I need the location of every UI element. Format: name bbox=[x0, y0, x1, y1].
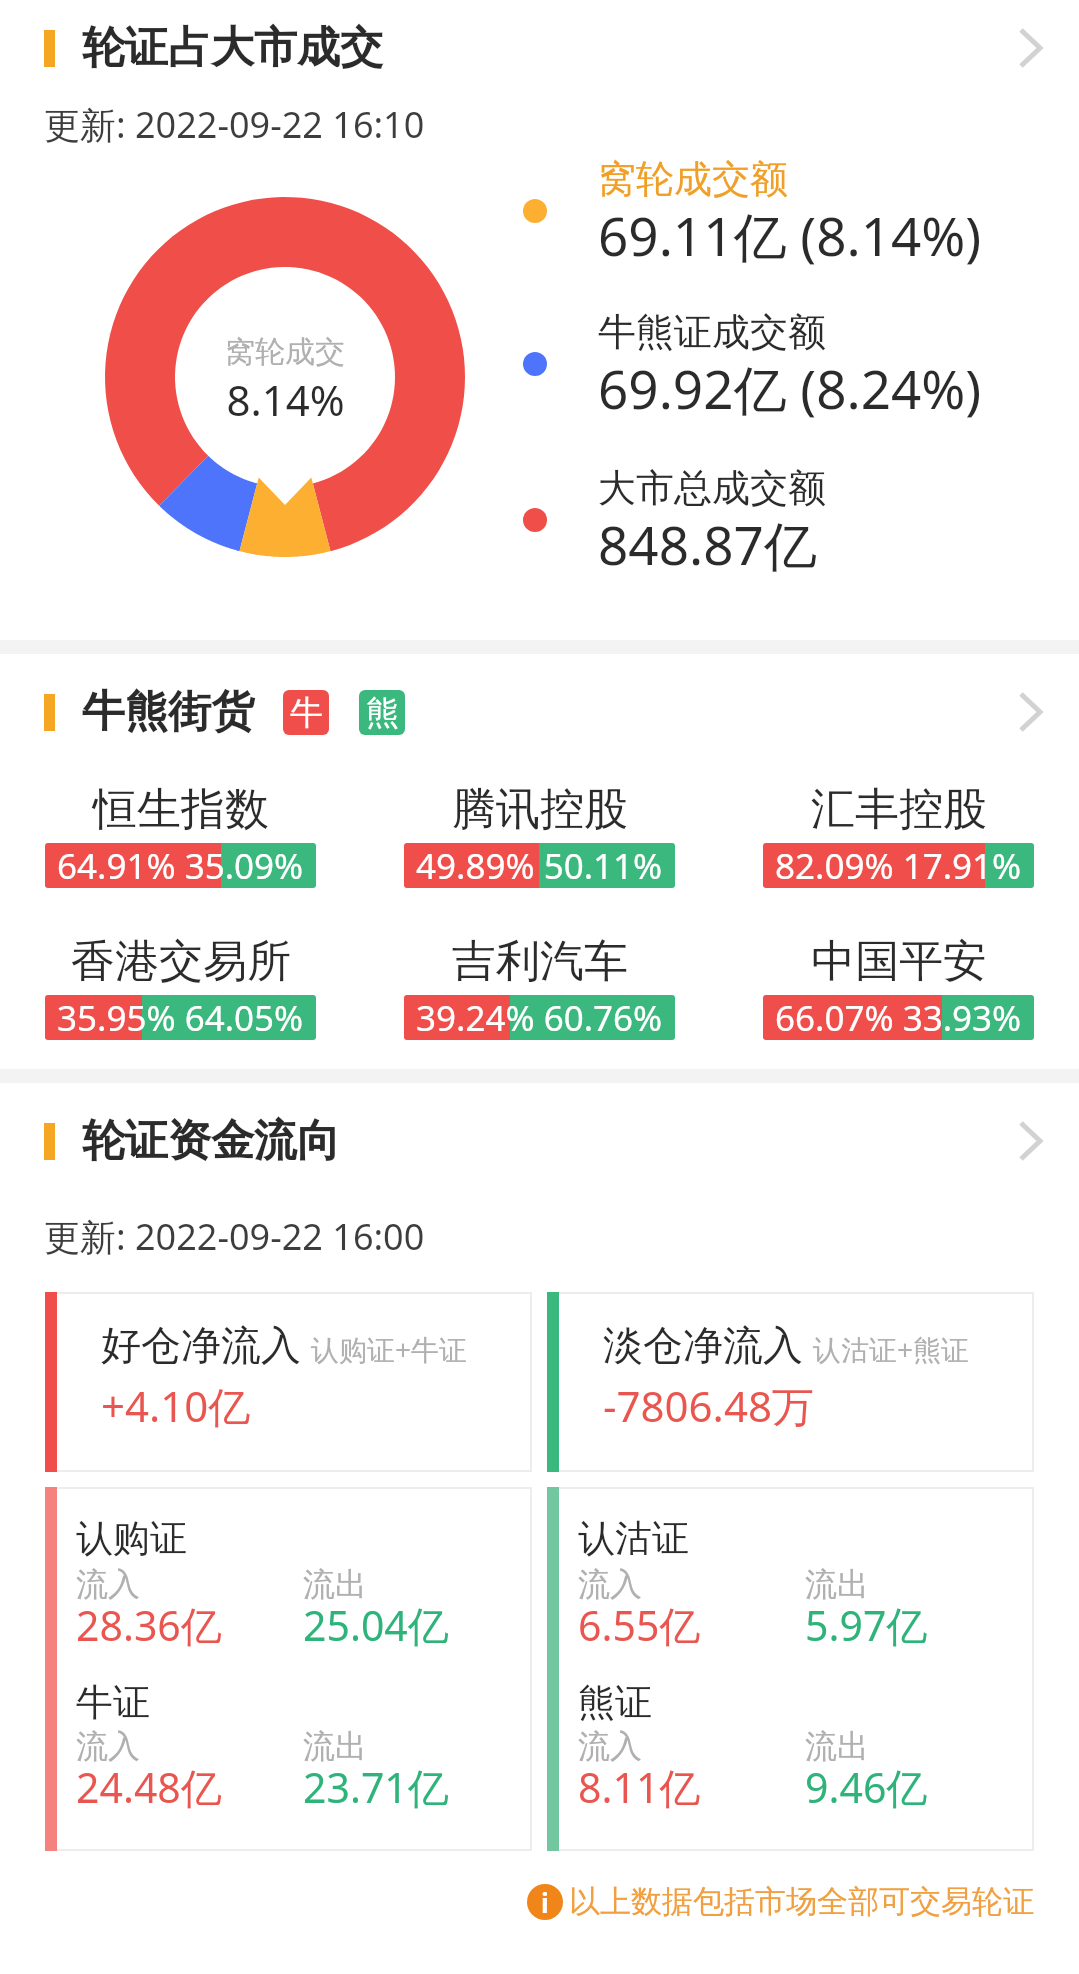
staticText: 中国平安 bbox=[811, 934, 987, 989]
staticText: 35.95% 64.05% bbox=[57, 994, 304, 1039]
button[interactable]: 香港交易所 bbox=[45, 934, 316, 1040]
staticText: 流出 bbox=[303, 1564, 367, 1604]
staticText: 流入 bbox=[578, 1726, 642, 1766]
staticText: 69.11亿 (8.14%) bbox=[598, 199, 982, 271]
staticText: +4.10亿 bbox=[101, 1377, 251, 1434]
staticText: 恒生指数 bbox=[93, 782, 269, 837]
staticText: 24.48亿 bbox=[76, 1759, 222, 1815]
button[interactable]: 腾讯控股 bbox=[404, 782, 675, 888]
staticText: 流入 bbox=[578, 1564, 642, 1604]
staticText: 流出 bbox=[805, 1564, 869, 1604]
staticText: 牛 bbox=[290, 692, 323, 734]
staticText: 5.97亿 bbox=[805, 1597, 928, 1653]
staticText: 窝轮成交额 bbox=[598, 155, 788, 203]
staticText: 69.92亿 (8.24%) bbox=[598, 352, 982, 424]
button[interactable]: 认沽证 bbox=[547, 1487, 1034, 1851]
button[interactable]: 牛熊街货 bbox=[0, 675, 1079, 749]
button[interactable]: 好仓净流入 bbox=[45, 1292, 532, 1472]
button[interactable]: 窝轮成交额 bbox=[523, 155, 907, 227]
staticText: 39.24% 60.76% bbox=[416, 994, 663, 1039]
staticText: -7806.48万 bbox=[603, 1377, 814, 1434]
staticText: 轮证资金流向 bbox=[82, 1114, 340, 1168]
staticText: 熊证 bbox=[578, 1679, 652, 1726]
staticText: 认沽证+熊证 bbox=[813, 1330, 970, 1368]
staticText: 66.07% 33.93% bbox=[775, 994, 1022, 1039]
staticText: 腾讯控股 bbox=[452, 782, 628, 837]
staticText: 848.87亿 bbox=[598, 508, 817, 580]
staticText: 好仓净流入 bbox=[101, 1320, 301, 1370]
staticText: 牛熊街货 bbox=[82, 685, 254, 739]
button[interactable]: 轮证资金流向 bbox=[0, 1104, 1079, 1178]
button[interactable]: Bear bbox=[359, 690, 405, 735]
staticText: 6.55亿 bbox=[578, 1597, 701, 1653]
other: More bbox=[1011, 689, 1057, 735]
staticText: 82.09% 17.91% bbox=[775, 842, 1022, 887]
staticText: 28.36亿 bbox=[76, 1597, 222, 1653]
other: More bbox=[1011, 25, 1057, 71]
staticText: 9.46亿 bbox=[805, 1759, 928, 1815]
button[interactable]: 认购证 bbox=[45, 1487, 532, 1851]
staticText: 大市总成交额 bbox=[598, 464, 826, 512]
button[interactable]: 恒生指数 bbox=[45, 782, 316, 888]
staticText: 窝轮成交 bbox=[225, 333, 345, 371]
staticText: 64.91% 35.09% bbox=[57, 842, 304, 887]
staticText: 汇丰控股 bbox=[811, 782, 987, 837]
staticText: 23.71亿 bbox=[303, 1759, 449, 1815]
button[interactable]: Bull bbox=[283, 690, 329, 735]
staticText: 牛熊证成交额 bbox=[598, 308, 826, 356]
staticText: 牛证 bbox=[76, 1679, 150, 1726]
staticText: 更新: 2022-09-22 16:10 bbox=[44, 100, 425, 149]
button[interactable]: 大市总成交额 bbox=[523, 464, 751, 536]
staticText: 以上数据包括市场全部可交易轮证 bbox=[569, 1882, 1034, 1921]
staticText: 熊 bbox=[366, 692, 399, 734]
button[interactable]: 淡仓净流入 bbox=[547, 1292, 1034, 1472]
staticText: 25.04亿 bbox=[303, 1597, 449, 1653]
staticText: 流出 bbox=[805, 1726, 869, 1766]
staticText: 流入 bbox=[76, 1726, 140, 1766]
button[interactable]: 汇丰控股 bbox=[763, 782, 1034, 888]
staticText: 轮证占大市成交 bbox=[82, 21, 383, 75]
staticText: 更新: 2022-09-22 16:00 bbox=[44, 1212, 425, 1261]
staticText: 流入 bbox=[76, 1564, 140, 1604]
staticText: 49.89% 50.11% bbox=[416, 842, 663, 887]
button[interactable]: 牛熊证成交额 bbox=[523, 308, 907, 380]
button[interactable]: 轮证占大市成交 bbox=[0, 11, 1079, 85]
button[interactable]: 中国平安 bbox=[763, 934, 1034, 1040]
other: More bbox=[1011, 1118, 1057, 1164]
button[interactable]: i bbox=[527, 1882, 1034, 1921]
staticText: 认沽证 bbox=[578, 1515, 689, 1562]
staticText: 吉利汽车 bbox=[452, 934, 628, 989]
staticText: 8.11亿 bbox=[578, 1759, 701, 1815]
staticText: 淡仓净流入 bbox=[603, 1320, 803, 1370]
staticText: 香港交易所 bbox=[71, 934, 291, 989]
staticText: 流出 bbox=[303, 1726, 367, 1766]
staticText: 8.14% bbox=[226, 371, 345, 428]
staticText: i bbox=[541, 1885, 549, 1920]
button[interactable]: 吉利汽车 bbox=[404, 934, 675, 1040]
staticText: 认购证 bbox=[76, 1515, 187, 1562]
staticText: 认购证+牛证 bbox=[311, 1330, 468, 1368]
